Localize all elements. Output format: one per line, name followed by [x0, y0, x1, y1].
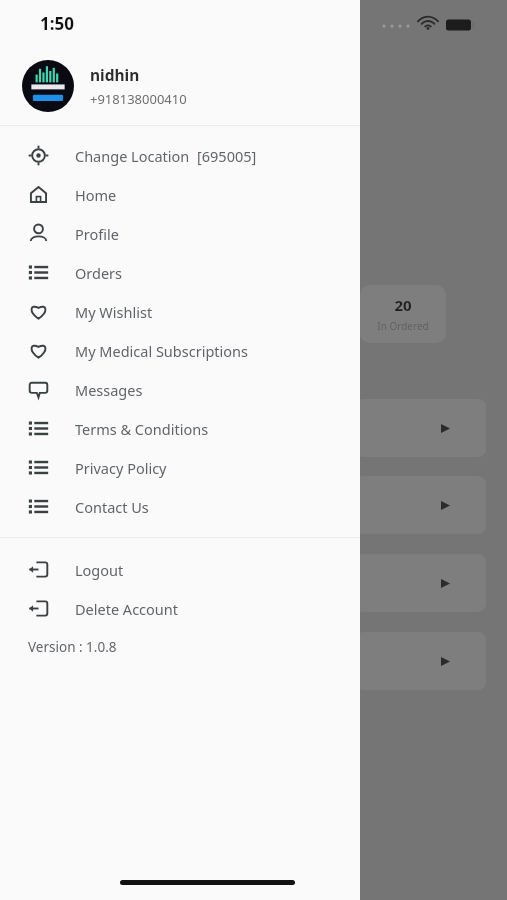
button[interactable]: Profile: [0, 214, 360, 253]
staticText: Logout: [75, 560, 124, 580]
button[interactable]: Privacy Policy: [0, 448, 360, 487]
staticText: 20: [394, 295, 412, 315]
button[interactable]: Change Location: [0, 136, 360, 175]
button[interactable]: Contact Us: [0, 487, 360, 526]
staticText: +918138000410: [90, 90, 187, 108]
staticText: nidhin: [90, 64, 140, 85]
button[interactable]: Orders: [0, 253, 360, 292]
button[interactable]: Logout: [0, 550, 360, 589]
staticText: Terms & Conditions: [75, 419, 209, 439]
staticText: Delete Account: [75, 599, 178, 619]
staticText: Orders: [75, 263, 123, 283]
button[interactable]: nidhin: [0, 46, 360, 125]
staticText: My Medical Subscriptions: [75, 341, 248, 361]
staticText: 1:50: [40, 12, 74, 35]
staticText: Change Location: [75, 146, 190, 166]
staticText: Profile: [75, 224, 119, 244]
staticText: Home: [75, 185, 117, 205]
button[interactable]: Delete Account: [0, 589, 360, 628]
button[interactable]: Home: [0, 175, 360, 214]
staticText: My Wishlist: [75, 302, 153, 322]
button[interactable]: Terms & Conditions: [0, 409, 360, 448]
staticText: [695005]: [197, 146, 257, 166]
staticText: Contact Us: [75, 497, 149, 517]
staticText: Privacy Policy: [75, 458, 167, 478]
button[interactable]: My Wishlist: [0, 292, 360, 331]
staticText: Version : 1.0.8: [28, 638, 117, 656]
staticText: In Ordered: [377, 319, 429, 333]
button[interactable]: Messages: [0, 370, 360, 409]
staticText: Messages: [75, 380, 143, 400]
button[interactable]: My Medical Subscriptions: [0, 331, 360, 370]
